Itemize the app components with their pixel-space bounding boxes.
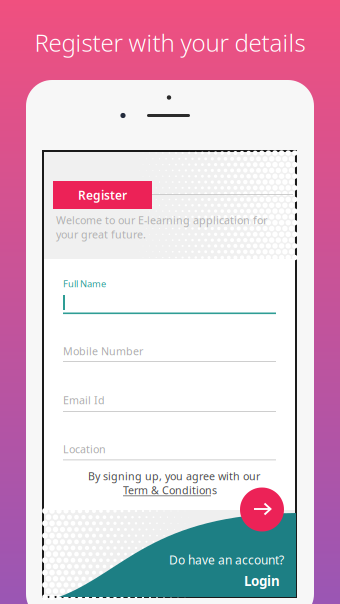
- staticText: Email Id: [63, 393, 105, 407]
- staticText: Term & Conditions: [123, 483, 217, 497]
- staticText: Register with your details: [34, 27, 305, 58]
- staticText: Login: [244, 572, 280, 590]
- staticText: Location: [63, 442, 106, 456]
- button[interactable]: Login: [0, 0, 340, 604]
- button[interactable]: Continue: [240, 487, 284, 531]
- staticText: Mobile Number: [63, 344, 143, 358]
- button[interactable]: Term & Conditions: [0, 0, 340, 604]
- staticText: By signing up, you agree with our: [88, 469, 260, 483]
- staticText: Welcome to our E-learning application fo…: [56, 213, 267, 241]
- button[interactable]: Register: [53, 181, 152, 209]
- staticText: Register: [78, 187, 127, 203]
- staticText: Full Name: [63, 277, 106, 290]
- staticText: Do have an account?: [169, 552, 284, 568]
